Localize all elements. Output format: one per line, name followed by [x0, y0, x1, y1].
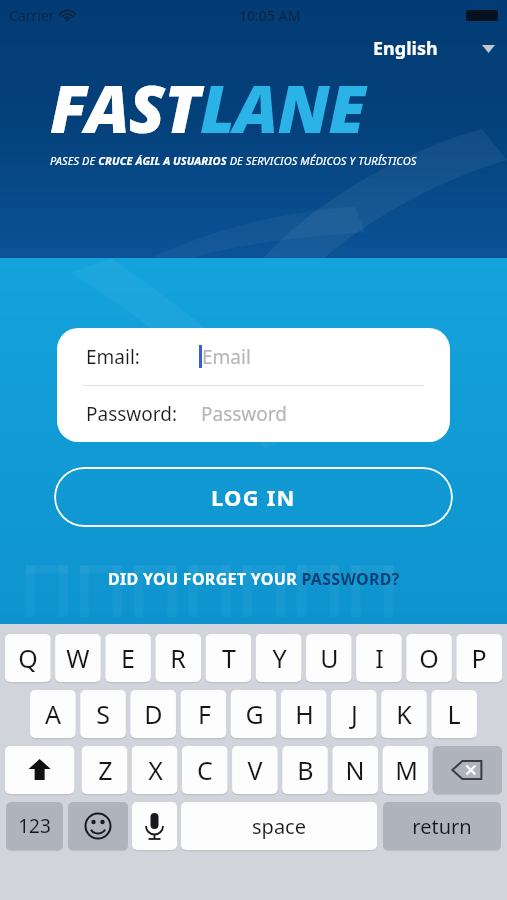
button[interactable]: E: [105, 634, 151, 682]
staticText: S: [96, 697, 110, 731]
staticText: J: [351, 697, 358, 731]
button[interactable]: Password:: [57, 386, 450, 442]
staticText: Password: [201, 401, 287, 427]
staticText: G: [245, 697, 264, 731]
staticText: Q: [18, 641, 38, 675]
button[interactable]: L: [431, 690, 477, 738]
staticText: PASES DE CRUCE ÁGIL A USUARIOS DE SERVIC…: [50, 153, 417, 168]
button[interactable]: M: [383, 746, 429, 794]
staticText: L: [447, 697, 461, 731]
staticText: I: [375, 641, 384, 675]
button[interactable]: N: [332, 746, 378, 794]
button[interactable]: O: [406, 634, 452, 682]
staticText: V: [247, 753, 263, 787]
staticText: K: [396, 697, 412, 731]
staticText: Y: [272, 641, 287, 675]
button[interactable]: A: [30, 690, 76, 738]
staticText: N: [345, 753, 365, 787]
button[interactable]: D: [130, 690, 176, 738]
staticText: F: [198, 697, 211, 731]
button[interactable]: U: [306, 634, 352, 682]
button[interactable]: I: [356, 634, 402, 682]
button[interactable]: G: [231, 690, 277, 738]
staticText: Z: [98, 753, 113, 787]
button[interactable]: Dictation: [132, 802, 177, 850]
button[interactable]: P: [456, 634, 502, 682]
staticText: 10:05 AM: [239, 6, 301, 25]
staticText: W: [66, 641, 90, 675]
button[interactable]: Email:: [57, 328, 450, 385]
button[interactable]: H: [281, 690, 327, 738]
button[interactable]: F: [181, 690, 227, 738]
staticText: U: [320, 641, 339, 675]
staticText: FAST: [50, 62, 200, 152]
staticText: B: [297, 753, 314, 787]
staticText: return: [412, 813, 472, 840]
button[interactable]: B: [282, 746, 328, 794]
button[interactable]: space: [181, 802, 377, 850]
staticText: Email: [202, 344, 251, 370]
other: Wi-Fi: [60, 9, 75, 21]
staticText: Password:: [86, 401, 178, 427]
button[interactable]: T: [206, 634, 252, 682]
staticText: P: [471, 641, 487, 675]
button[interactable]: J: [331, 690, 377, 738]
button[interactable]: Backspace: [433, 746, 502, 794]
staticText: R: [170, 641, 186, 675]
button[interactable]: return: [383, 802, 501, 850]
button[interactable]: X: [132, 746, 178, 794]
button[interactable]: Q: [5, 634, 51, 682]
button[interactable]: Z: [82, 746, 128, 794]
staticText: English: [373, 36, 438, 61]
staticText: Carrier: [9, 6, 55, 25]
staticText: M: [395, 753, 418, 787]
staticText: space: [252, 813, 306, 840]
staticText: DID YOU FORGET YOUR PASSWORD?: [108, 568, 400, 590]
button[interactable]: 123: [6, 802, 63, 850]
button[interactable]: C: [182, 746, 228, 794]
button[interactable]: DID YOU FORGET YOUR PASSWORD?: [98, 564, 410, 594]
staticText: O: [419, 641, 439, 675]
button[interactable]: Emoji: [68, 802, 128, 850]
button[interactable]: S: [80, 690, 126, 738]
staticText: D: [144, 697, 163, 731]
staticText: 123: [18, 813, 51, 839]
staticText: H: [295, 697, 314, 731]
staticText: T: [222, 641, 236, 675]
button[interactable]: Y: [256, 634, 302, 682]
button[interactable]: English: [367, 33, 501, 64]
button[interactable]: W: [55, 634, 101, 682]
button[interactable]: V: [232, 746, 278, 794]
button[interactable]: LOG IN: [54, 467, 453, 527]
staticText: Email:: [86, 344, 140, 370]
button[interactable]: Shift: [5, 746, 74, 794]
staticText: X: [148, 753, 163, 787]
button[interactable]: R: [155, 634, 201, 682]
button[interactable]: K: [381, 690, 427, 738]
staticText: LOG IN: [211, 482, 296, 512]
staticText: LANE: [200, 62, 365, 152]
staticText: C: [197, 753, 213, 787]
staticText: A: [45, 697, 61, 731]
staticText: E: [121, 641, 135, 675]
